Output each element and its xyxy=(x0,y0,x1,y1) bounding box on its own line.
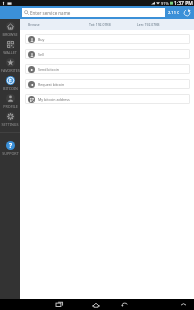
staticText: SUPPORT xyxy=(2,151,19,156)
staticText: FAVORITES xyxy=(1,68,20,73)
staticText: Enter service name xyxy=(30,10,71,16)
button[interactable]: ? xyxy=(0,139,20,157)
staticText: Len: 192.07KB xyxy=(137,22,160,27)
button[interactable]: Expand xyxy=(176,299,191,310)
button[interactable]: Send bitcoin xyxy=(25,64,190,74)
staticText: My bitcoin address xyxy=(38,97,70,102)
staticText: PROFILE xyxy=(3,104,18,109)
staticText: 1:37 PM xyxy=(174,0,193,6)
button[interactable]: WALLET xyxy=(0,38,20,56)
button[interactable]: Enter service name xyxy=(22,8,165,17)
staticText: Browse xyxy=(28,22,40,27)
button[interactable]: 2.11 ¢ xyxy=(167,8,180,17)
button[interactable]: Sell xyxy=(25,49,190,59)
staticText: Tot: 192.07KB xyxy=(89,22,111,27)
staticText: Send bitcoin xyxy=(38,67,59,72)
button[interactable]: BROWSE xyxy=(0,20,20,38)
button[interactable]: Home xyxy=(89,299,103,310)
button[interactable]: Refresh xyxy=(180,6,193,19)
staticText: ? xyxy=(9,141,13,150)
staticText: Sell xyxy=(38,52,44,57)
button[interactable]: Request bitcoin xyxy=(25,79,190,89)
button[interactable]: BITCOIN xyxy=(0,74,20,92)
button[interactable]: Recents xyxy=(52,299,66,310)
staticText: BROWSE xyxy=(2,32,18,37)
staticText: Buy xyxy=(38,37,45,42)
staticText: BITCOIN xyxy=(3,86,18,91)
staticText: WALLET xyxy=(3,50,17,55)
staticText: Request bitcoin xyxy=(38,82,65,87)
staticText: 91% xyxy=(161,1,169,6)
button[interactable]: FAVORITES xyxy=(0,56,20,74)
button[interactable]: Buy xyxy=(25,34,190,44)
staticText: SETTINGS xyxy=(1,122,19,127)
button[interactable]: SETTINGS xyxy=(0,110,20,128)
button[interactable]: My bitcoin address xyxy=(25,94,190,104)
staticText: 2.11 ¢ xyxy=(168,10,180,15)
button[interactable]: Back xyxy=(117,299,131,310)
button[interactable]: PROFILE xyxy=(0,92,20,110)
